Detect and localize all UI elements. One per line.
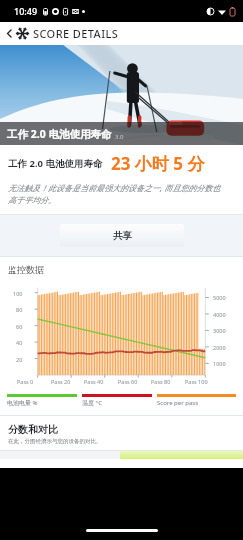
- staticText: 60: [16, 323, 23, 330]
- staticText: 5000: [213, 294, 226, 301]
- staticText: 监控数据: [8, 264, 243, 275]
- staticText: 3000: [213, 327, 226, 334]
- staticText: 20: [16, 356, 23, 363]
- staticText: 4000: [213, 311, 226, 318]
- button[interactable]: Back: [3, 27, 16, 40]
- staticText: 80: [16, 306, 23, 313]
- button[interactable]: [0, 451, 243, 459]
- staticText: 100: [13, 290, 23, 297]
- staticText: Pass 40: [84, 378, 104, 385]
- staticText: 温度 °C: [82, 399, 102, 407]
- staticText: 工作 2.0 电池使用寿命: [8, 157, 103, 170]
- staticText: Pass 0: [17, 378, 34, 385]
- staticText: 分数和对比: [8, 423, 58, 436]
- staticText: Pass 20: [51, 378, 71, 385]
- staticText: 电池电量 %: [7, 399, 38, 407]
- staticText: 23 小时 5 分: [111, 152, 205, 175]
- staticText: 1000: [213, 360, 226, 367]
- staticText: 2000: [213, 344, 226, 351]
- staticText: 10:49: [14, 5, 38, 17]
- staticText: SCORE DETAILS: [33, 26, 119, 41]
- button[interactable]: 电池电量 %: [7, 394, 77, 407]
- button[interactable]: 共享: [60, 224, 184, 247]
- staticText: Pass 60: [118, 378, 138, 385]
- staticText: 在此，分图经濟示与您的设备的对比。: [8, 438, 102, 445]
- staticText: Score per pass: [157, 399, 199, 407]
- button[interactable]: 温度 °C: [82, 394, 152, 407]
- staticText: 40: [16, 339, 23, 346]
- staticText: 共享: [113, 230, 132, 242]
- staticText: 3.0: [115, 133, 124, 141]
- staticText: 无法触及！此设备是当前最强大的设备之一, 而且您的分数也高于平均分。: [8, 182, 221, 205]
- staticText: 工作 2.0 电池使用寿命: [7, 127, 112, 141]
- button[interactable]: Score per pass: [157, 394, 236, 407]
- staticText: Pass 100: [185, 378, 208, 385]
- staticText: Pass 80: [151, 378, 171, 385]
